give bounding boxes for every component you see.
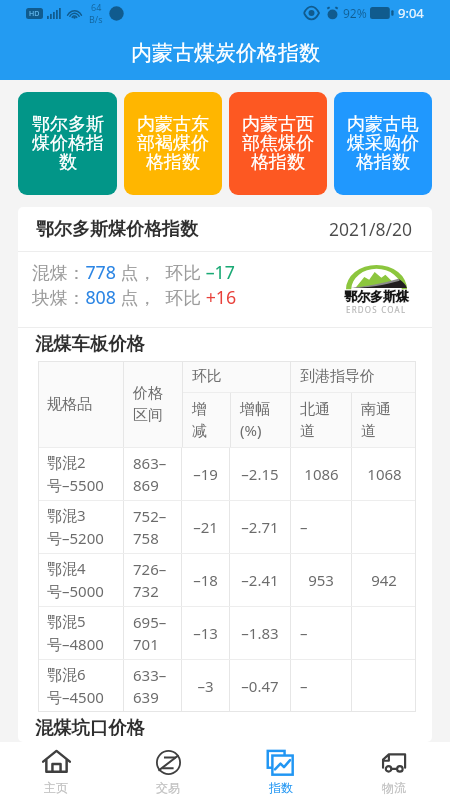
staticText: –13 <box>193 623 218 643</box>
staticText: 块煤：808 点， 环比 +16 <box>32 285 237 309</box>
staticText: 64 <box>91 1 102 13</box>
staticText: – <box>300 517 308 537</box>
other: 主页 <box>42 748 71 777</box>
button[interactable]: 交易 <box>112 742 224 800</box>
staticText: –3 <box>197 676 214 696</box>
staticText: 物流 <box>382 780 406 795</box>
button[interactable]: 内蒙古电 煤采购价 格指数 <box>334 92 432 195</box>
staticText: –0.47 <box>241 676 279 696</box>
button[interactable]: 内蒙古东 部褐煤价 格指数 <box>124 92 222 195</box>
button[interactable]: 物流 <box>337 742 450 800</box>
staticText: 增幅 (%) <box>240 400 270 441</box>
other: 物流 <box>379 748 408 777</box>
staticText: 环比 <box>192 367 222 386</box>
staticText: –19 <box>193 464 218 484</box>
staticText: – <box>300 676 308 696</box>
button[interactable]: 内蒙古西 部焦煤价 格指数 <box>229 92 327 195</box>
other: 交易 <box>154 748 183 777</box>
staticText: 增 减 <box>192 400 207 440</box>
staticText: 鄂混6 号–4500 <box>47 664 104 708</box>
staticText: 主页 <box>44 780 68 795</box>
staticText: 到港指导价 <box>300 367 375 386</box>
staticText: –21 <box>193 517 218 537</box>
staticText: –2.71 <box>241 517 279 537</box>
staticText: 价格 区间 <box>133 384 163 424</box>
staticText: – <box>300 623 308 643</box>
staticText: 南通 道 <box>361 400 391 440</box>
staticText: 942 <box>371 570 397 590</box>
staticText: 鄂混2 号–5500 <box>47 452 104 496</box>
staticText: –1.83 <box>241 623 279 643</box>
staticText: 鄂尔多斯 煤价格指 数 <box>32 113 104 174</box>
staticText: 内蒙古电 煤采购价 格指数 <box>347 113 419 174</box>
other: 指数 <box>266 748 295 777</box>
staticText: 内蒙古煤炭价格指数 <box>131 40 320 66</box>
staticText: 633– 639 <box>133 665 167 708</box>
staticText: –18 <box>193 570 218 590</box>
staticText: 混煤坑口价格 <box>35 716 145 736</box>
staticText: 695– 701 <box>133 612 167 655</box>
staticText: 鄂尔多斯煤价格指数 <box>36 218 198 241</box>
staticText: 鄂混4 号–5000 <box>47 558 104 602</box>
button[interactable]: 主页 <box>0 742 112 800</box>
staticText: –2.15 <box>241 464 279 484</box>
staticText: 2021/8/20 <box>329 217 413 241</box>
staticText: 鄂混5 号–4800 <box>47 611 104 655</box>
staticText: 鄂混3 号–5200 <box>47 505 104 549</box>
staticText: 752– 758 <box>133 506 167 549</box>
staticText: 交易 <box>156 780 180 795</box>
staticText: 混煤：778 点， 环比 –17 <box>32 260 235 284</box>
staticText: 726– 732 <box>133 559 167 602</box>
staticText: 1068 <box>367 464 402 484</box>
staticText: 北通 道 <box>300 400 330 440</box>
staticText: 指数 <box>269 780 293 795</box>
staticText: 9:04 <box>398 4 424 22</box>
staticText: B/s <box>89 13 103 25</box>
button[interactable]: 指数 <box>224 742 337 800</box>
staticText: 1086 <box>304 464 339 484</box>
button[interactable]: 鄂尔多斯 煤价格指 数 <box>18 92 117 195</box>
staticText: 内蒙古东 部褐煤价 格指数 <box>137 113 209 174</box>
staticText: 863– 869 <box>133 453 167 496</box>
staticText: 混煤车板价格 <box>35 332 145 355</box>
staticText: –2.41 <box>241 570 279 590</box>
staticText: 953 <box>308 570 334 590</box>
staticText: ERDOS COAL <box>346 304 407 315</box>
staticText: 鄂尔多斯煤 <box>344 288 409 304</box>
staticText: 内蒙古西 部焦煤价 格指数 <box>242 113 314 174</box>
staticText: HD <box>29 9 40 19</box>
staticText: 规格品 <box>47 395 92 414</box>
staticText: 92% <box>343 5 367 21</box>
